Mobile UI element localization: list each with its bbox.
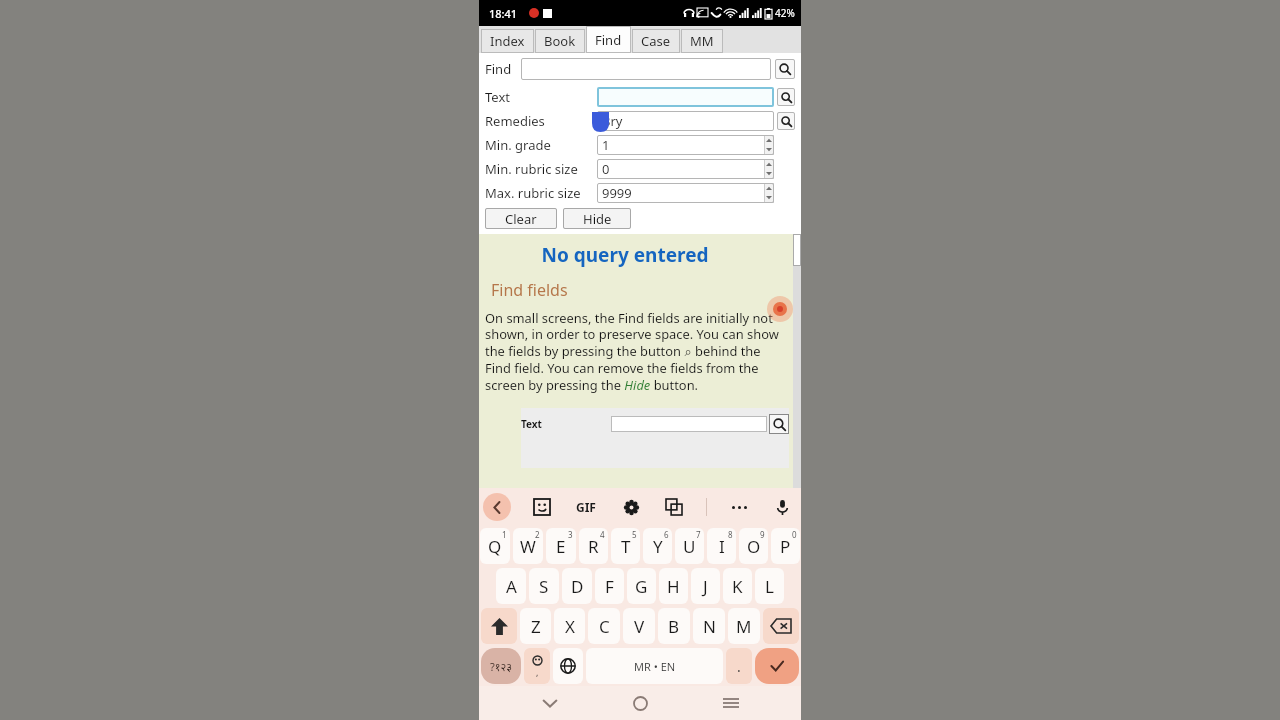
button[interactable]: I	[707, 528, 736, 564]
button[interactable]: Enter	[755, 648, 799, 684]
button[interactable]: H	[659, 568, 688, 604]
staticText: Find	[485, 60, 521, 78]
button[interactable]: 9999	[597, 183, 774, 203]
staticText: MR • EN	[634, 659, 676, 674]
staticText: H	[667, 575, 680, 598]
staticText: Hide	[583, 210, 612, 228]
button[interactable]: Back	[483, 493, 511, 521]
button[interactable]: Search	[777, 112, 795, 130]
staticText: Clear	[505, 210, 537, 228]
button[interactable]: Voice input	[771, 496, 793, 518]
button[interactable]	[597, 87, 774, 107]
staticText: Y	[653, 535, 663, 558]
staticText: 9999	[602, 184, 764, 202]
staticText: Min. rubric size	[485, 160, 597, 178]
button[interactable]: ?१२३	[481, 648, 521, 684]
staticText: Case	[641, 32, 671, 50]
button[interactable]: MM	[681, 29, 723, 53]
staticText: Text	[485, 88, 597, 106]
staticText: On small screens, the Find fields are in…	[485, 309, 789, 394]
staticText: Index	[490, 32, 525, 50]
button[interactable]: S	[529, 568, 559, 604]
staticText: R	[588, 535, 599, 558]
button[interactable]: Search	[777, 88, 795, 106]
button[interactable]: Recent apps	[711, 686, 751, 720]
staticText: W	[520, 535, 536, 558]
staticText: Min. grade	[485, 136, 597, 154]
staticText: Bry	[602, 112, 623, 130]
staticText: 42%	[775, 6, 795, 20]
staticText: E	[556, 535, 566, 558]
staticText: 0	[792, 529, 797, 540]
button[interactable]: Backspace	[763, 608, 799, 644]
button[interactable]: B	[658, 608, 690, 644]
button[interactable]: L	[755, 568, 784, 604]
staticText: ,	[536, 666, 539, 678]
staticText: Z	[531, 615, 541, 638]
button[interactable]: GIF	[573, 496, 599, 518]
button[interactable]: Index	[481, 29, 534, 53]
button[interactable]: Book	[535, 29, 585, 53]
button[interactable]: Home	[620, 686, 660, 720]
staticText: ?१२३	[490, 659, 512, 674]
button[interactable]: Sticker	[531, 496, 553, 518]
button[interactable]: C	[588, 608, 620, 644]
staticText: A	[506, 575, 517, 598]
button[interactable]: A	[496, 568, 526, 604]
staticText: 3	[568, 529, 573, 540]
button[interactable]: Settings	[620, 496, 642, 518]
button[interactable]: F	[595, 568, 624, 604]
button[interactable]: Bry	[597, 111, 774, 131]
button[interactable]: MR • EN	[586, 648, 723, 684]
button[interactable]: Find	[586, 26, 631, 53]
button[interactable]: Change language	[553, 648, 583, 684]
button[interactable]: 0	[597, 159, 774, 179]
button[interactable]: Back	[530, 686, 570, 720]
button[interactable]: T	[611, 528, 640, 564]
button[interactable]: Y	[643, 528, 672, 564]
staticText: Find	[595, 31, 622, 49]
button[interactable]: U	[675, 528, 704, 564]
button[interactable]: G	[627, 568, 656, 604]
button[interactable]: O	[739, 528, 768, 564]
button[interactable]	[521, 58, 771, 80]
staticText: D	[571, 575, 584, 598]
button[interactable]: J	[691, 568, 720, 604]
button[interactable]: V	[623, 608, 655, 644]
staticText: 1	[502, 529, 507, 540]
button[interactable]: Emoji	[524, 648, 550, 684]
staticText: Book	[544, 32, 576, 50]
button[interactable]: Translate	[663, 496, 685, 518]
button[interactable]: Clear	[485, 208, 557, 229]
button[interactable]: D	[562, 568, 592, 604]
staticText: Max. rubric size	[485, 184, 597, 202]
button[interactable]: W	[513, 528, 543, 564]
staticText: Remedies	[485, 112, 597, 130]
staticText: J	[703, 575, 708, 598]
button[interactable]: Search	[775, 59, 795, 79]
staticText: 9	[760, 529, 765, 540]
button[interactable]: X	[554, 608, 585, 644]
button[interactable]: More options	[728, 496, 750, 518]
staticText: .	[737, 657, 741, 676]
button[interactable]: Shift	[481, 608, 517, 644]
button[interactable]: N	[693, 608, 725, 644]
button[interactable]: M	[728, 608, 760, 644]
button[interactable]: 1	[597, 135, 774, 155]
button[interactable]: .	[726, 648, 752, 684]
button[interactable]: Q	[480, 528, 510, 564]
button[interactable]: Case	[632, 29, 680, 53]
staticText: K	[732, 575, 743, 598]
staticText: Text	[521, 417, 611, 431]
button[interactable]: E	[546, 528, 576, 564]
button[interactable]: Hide	[563, 208, 631, 229]
staticText: O	[747, 535, 761, 558]
button[interactable]: P	[771, 528, 800, 564]
staticText: P	[780, 535, 791, 558]
staticText: B	[668, 615, 680, 638]
staticText: L	[765, 575, 774, 598]
button[interactable]: K	[723, 568, 752, 604]
button[interactable]: Z	[520, 608, 551, 644]
button[interactable]: R	[579, 528, 608, 564]
staticText: 7	[696, 529, 701, 540]
